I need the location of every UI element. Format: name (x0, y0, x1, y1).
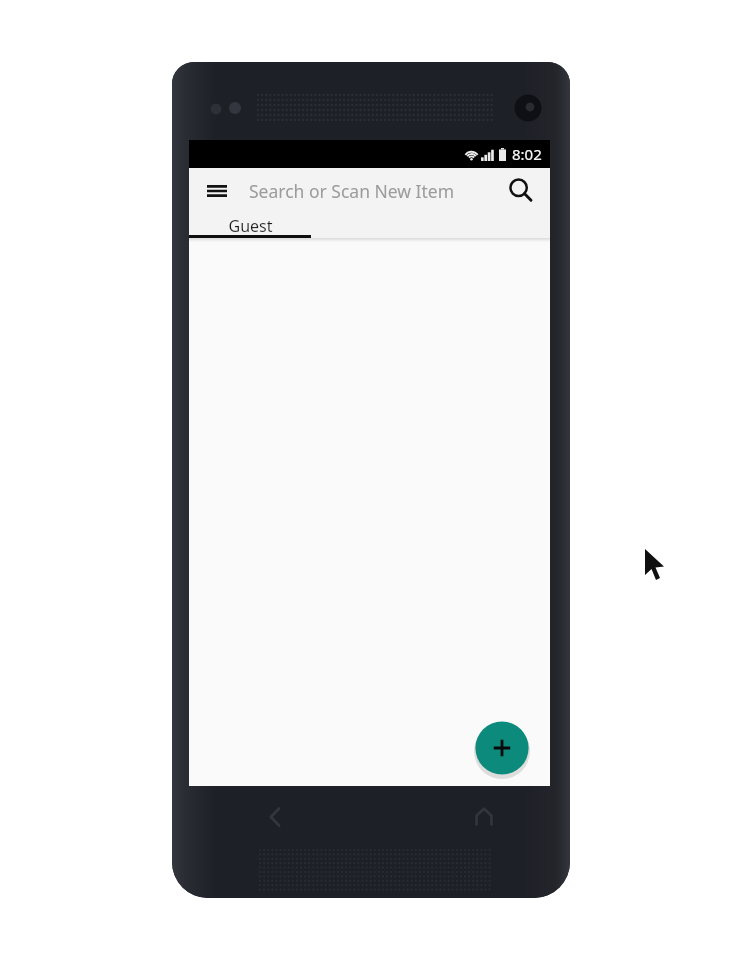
button[interactable]: Home (467, 800, 501, 834)
button[interactable]: Back (258, 800, 292, 834)
button[interactable]: Add new item (474, 720, 530, 776)
staticText: 8:02 (512, 144, 542, 164)
staticText: Search or Scan New Item (249, 179, 455, 203)
button[interactable]: Search (501, 171, 541, 211)
button[interactable]: Open navigation menu (197, 171, 237, 211)
button[interactable]: Guest (189, 214, 311, 238)
staticText: Guest (228, 215, 273, 237)
button[interactable]: Search or Scan New Item (249, 168, 493, 214)
